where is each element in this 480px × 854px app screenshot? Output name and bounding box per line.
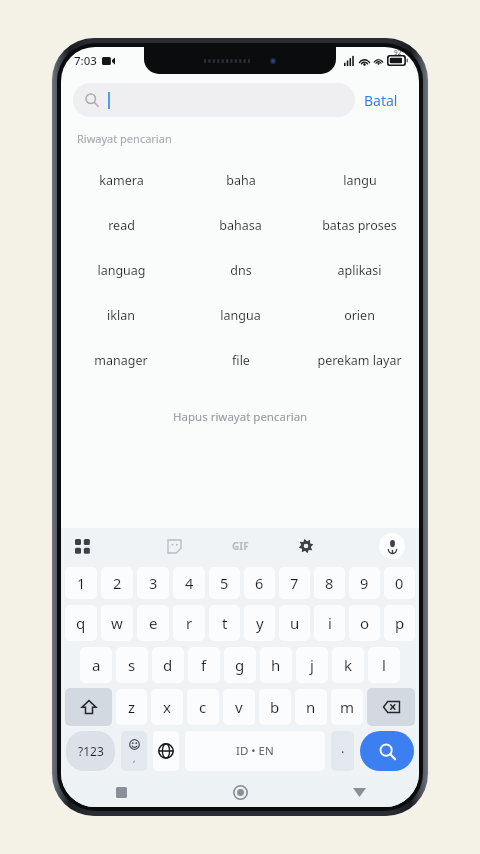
button[interactable]: Apps: [75, 528, 141, 564]
staticText: q: [76, 613, 86, 633]
button[interactable]: c: [187, 689, 219, 725]
staticText: GIF: [232, 539, 249, 553]
staticText: a: [92, 655, 101, 675]
staticText: iklan: [107, 307, 135, 324]
button[interactable]: Change language: [153, 731, 179, 771]
button[interactable]: iklan: [61, 293, 181, 338]
button[interactable]: o: [349, 605, 380, 641]
button[interactable]: Settings: [273, 528, 339, 564]
button[interactable]: r: [173, 605, 205, 641]
button[interactable]: 5: [209, 567, 240, 599]
button[interactable]: ID • EN: [185, 731, 325, 771]
button[interactable]: g: [224, 647, 256, 683]
button[interactable]: v: [223, 689, 255, 725]
button[interactable]: aplikasi: [300, 248, 419, 293]
button[interactable]: 4: [173, 567, 205, 599]
button[interactable]: dns: [181, 248, 300, 293]
staticText: l: [382, 655, 386, 675]
button[interactable]: batas proses: [300, 203, 419, 248]
button[interactable]: j: [296, 647, 328, 683]
staticText: c: [199, 697, 207, 717]
button[interactable]: baha: [181, 158, 300, 203]
button[interactable]: Emoji: [121, 731, 147, 771]
button[interactable]: x: [151, 689, 183, 725]
staticText: kamera: [99, 172, 144, 189]
button[interactable]: 0: [384, 567, 415, 599]
button[interactable]: z: [116, 689, 147, 725]
staticText: dns: [230, 262, 252, 279]
staticText: g: [235, 655, 245, 675]
button[interactable]: u: [279, 605, 310, 641]
button[interactable]: Hapus riwayat pencarian: [163, 405, 318, 429]
staticText: languag: [97, 262, 146, 279]
button[interactable]: m: [331, 689, 363, 725]
button[interactable]: a: [80, 647, 112, 683]
button[interactable]: languag: [61, 248, 181, 293]
button[interactable]: Search: [360, 731, 414, 771]
staticText: t: [222, 613, 228, 633]
button[interactable]: Backspace: [367, 688, 415, 726]
staticText: bahasa: [219, 217, 262, 234]
staticText: k: [344, 655, 353, 675]
staticText: batas proses: [322, 217, 397, 234]
button[interactable]: i: [314, 605, 345, 641]
button[interactable]: b: [259, 689, 291, 725]
button[interactable]: orien: [300, 293, 419, 338]
staticText: 7:03: [74, 53, 97, 69]
button[interactable]: k: [332, 647, 364, 683]
button[interactable]: t: [209, 605, 240, 641]
staticText: n: [306, 697, 316, 717]
button[interactable]: h: [260, 647, 292, 683]
button[interactable]: s: [116, 647, 148, 683]
button[interactable]: Shift: [65, 688, 112, 726]
button[interactable]: ?123: [66, 731, 115, 771]
button[interactable]: file: [181, 338, 300, 383]
button[interactable]: manager: [61, 338, 181, 383]
button[interactable]: bahasa: [181, 203, 300, 248]
staticText: langua: [220, 307, 261, 324]
button[interactable]: GIF: [207, 528, 273, 564]
button[interactable]: langu: [300, 158, 419, 203]
button[interactable]: 2: [101, 567, 133, 599]
staticText: ?123: [78, 743, 104, 759]
button[interactable]: l: [368, 647, 400, 683]
staticText: ID • EN: [236, 743, 274, 759]
button[interactable]: langua: [181, 293, 300, 338]
button[interactable]: Recent apps: [61, 777, 181, 807]
button[interactable]: kamera: [61, 158, 181, 203]
button[interactable]: y: [244, 605, 275, 641]
button[interactable]: Home: [181, 777, 300, 807]
button[interactable]: f: [188, 647, 220, 683]
button[interactable]: p: [384, 605, 415, 641]
staticText: b: [270, 697, 280, 717]
staticText: 7: [290, 573, 299, 593]
button[interactable]: perekam layar: [300, 338, 419, 383]
button[interactable]: w: [101, 605, 133, 641]
button[interactable]: d: [152, 647, 184, 683]
button[interactable]: 7: [279, 567, 310, 599]
button[interactable]: 1: [65, 567, 97, 599]
button[interactable]: .: [331, 731, 354, 771]
button[interactable]: 6: [244, 567, 275, 599]
staticText: langu: [343, 172, 377, 189]
button[interactable]: [73, 83, 355, 117]
staticText: d: [163, 655, 173, 675]
button[interactable]: read: [61, 203, 181, 248]
staticText: 92: [394, 48, 402, 57]
staticText: e: [149, 613, 158, 633]
button[interactable]: q: [65, 605, 97, 641]
staticText: f: [201, 655, 207, 675]
button[interactable]: n: [295, 689, 327, 725]
button[interactable]: 8: [314, 567, 345, 599]
button[interactable]: e: [137, 605, 169, 641]
button[interactable]: 9: [349, 567, 380, 599]
button[interactable]: Back: [300, 777, 419, 807]
button[interactable]: Batal: [355, 85, 407, 116]
button[interactable]: 3: [137, 567, 169, 599]
button[interactable]: Stickers: [141, 528, 207, 564]
button[interactable]: Voice input: [339, 528, 405, 564]
staticText: manager: [94, 352, 148, 369]
staticText: aplikasi: [337, 262, 382, 279]
staticText: perekam layar: [317, 352, 402, 369]
staticText: j: [310, 655, 314, 675]
